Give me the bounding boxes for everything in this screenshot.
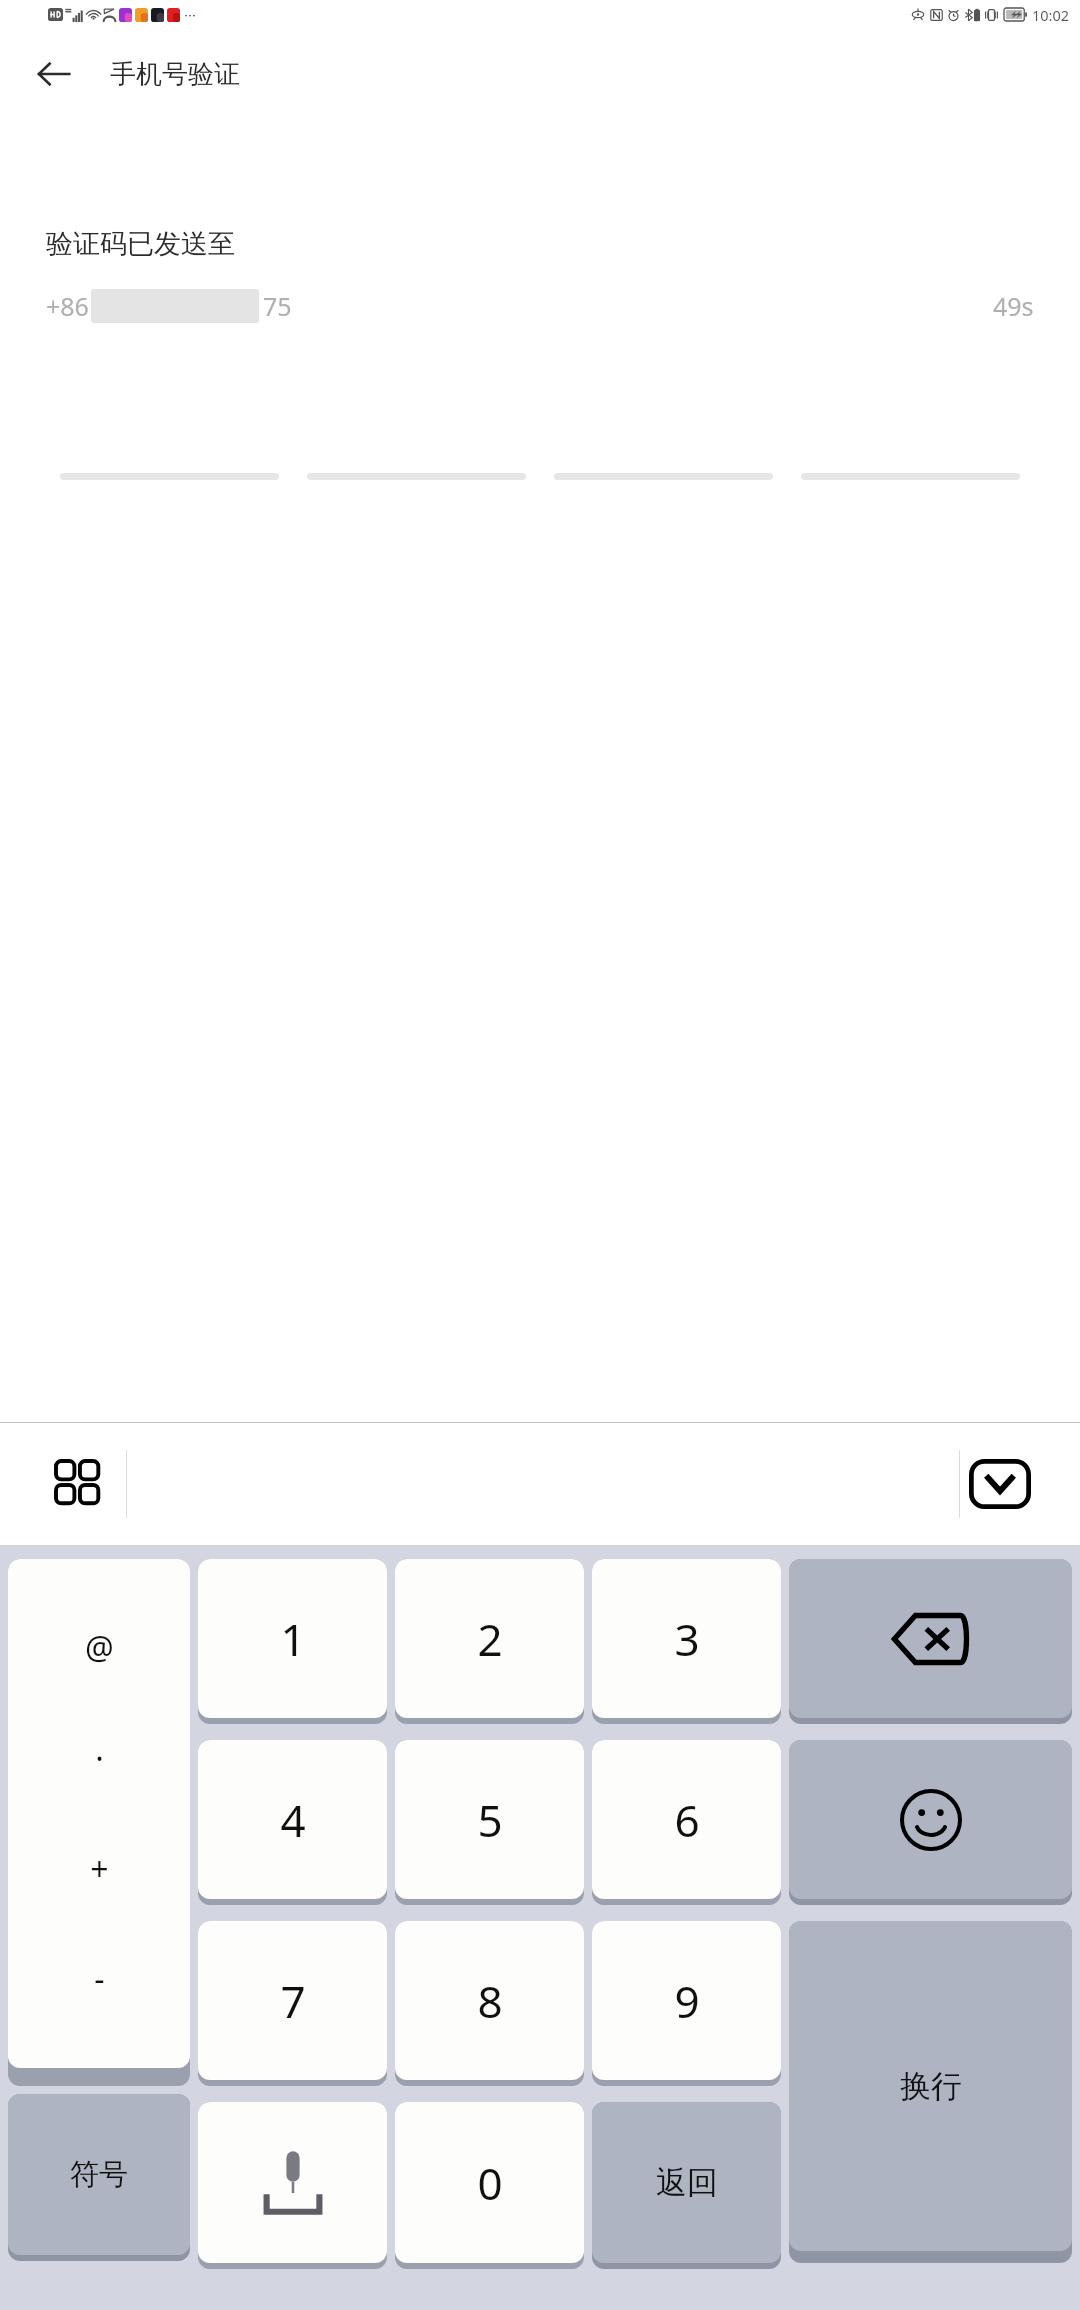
staticText: 返回 [656, 2163, 718, 2202]
staticText: 换行 [900, 2067, 962, 2106]
button[interactable]: 4 [198, 1740, 387, 1905]
button[interactable]: Delete [789, 1559, 1072, 1724]
staticText: - [94, 1957, 105, 2001]
staticText: + [90, 1847, 109, 1891]
staticText: · [95, 1736, 104, 1780]
button[interactable]: 6 [592, 1740, 781, 1905]
staticText: 手机号验证 [110, 58, 240, 91]
staticText: 75 [263, 289, 292, 323]
button[interactable]: 49s [993, 289, 1034, 323]
button[interactable]: 7 [198, 1921, 387, 2086]
staticText: 验证码已发送至 [46, 227, 235, 261]
button[interactable]: Symbols @ . + - [8, 1559, 190, 2086]
button[interactable]: 5 [395, 1740, 584, 1905]
button[interactable]: Keyboard layouts [46, 1451, 112, 1517]
button[interactable]: Emoji [789, 1740, 1072, 1905]
staticText: 10:02 [1032, 5, 1070, 25]
staticText: +86 [46, 289, 89, 323]
staticText: @ [85, 1626, 114, 1670]
staticText: 9 [674, 1971, 700, 2031]
button[interactable]: 8 [395, 1921, 584, 2086]
button[interactable]: 3 [592, 1559, 781, 1724]
button[interactable]: Hide keyboard [960, 1444, 1040, 1524]
button[interactable]: 9 [592, 1921, 781, 2086]
staticText: 3 [674, 1609, 700, 1669]
staticText: 8 [477, 1971, 503, 2031]
staticText: 6 [674, 1790, 700, 1850]
button[interactable]: 换行 [789, 1921, 1072, 2263]
staticText: 0 [477, 2153, 503, 2213]
button[interactable]: Voice input [198, 2102, 387, 2269]
staticText: 7 [280, 1971, 306, 2031]
staticText: 5 [477, 1790, 503, 1850]
staticText: 49s [993, 289, 1034, 323]
staticText: 2 [477, 1609, 503, 1669]
button[interactable]: 2 [395, 1559, 584, 1724]
button[interactable]: Back [24, 44, 84, 104]
button[interactable]: 0 [395, 2102, 584, 2269]
staticText: 4 [280, 1790, 306, 1850]
staticText: 符号 [70, 2156, 128, 2193]
button[interactable]: 返回 [592, 2102, 781, 2269]
button[interactable]: 符号 [8, 2094, 190, 2261]
staticText: 1 [280, 1609, 306, 1669]
button[interactable]: 1 [198, 1559, 387, 1724]
